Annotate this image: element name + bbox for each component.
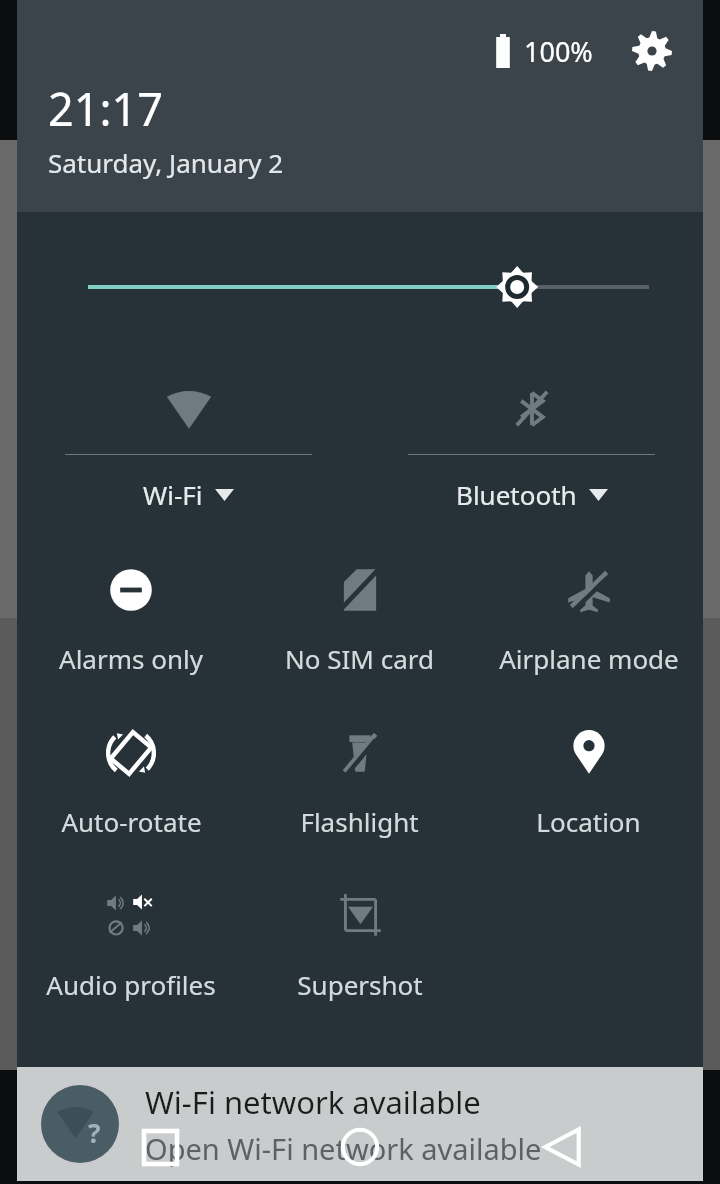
staticText: Supershot [297, 967, 423, 1002]
button[interactable]: Auto-rotate [17, 700, 245, 863]
button[interactable]: Bluetooth [360, 362, 703, 537]
staticText: Open Wi-Fi network available [145, 1129, 542, 1168]
staticText: Location [536, 804, 641, 839]
button[interactable]: Flashlight [245, 700, 474, 863]
button[interactable]: Wi-Fi [17, 362, 360, 537]
staticText: Wi-Fi [143, 477, 203, 512]
button[interactable]: ? [17, 1067, 703, 1181]
button[interactable]: Alarms only [17, 537, 245, 700]
button[interactable]: Brightness [17, 212, 703, 362]
button[interactable]: No SIM card [245, 537, 474, 700]
staticText: Airplane mode [499, 641, 679, 676]
button[interactable]: Recents [128, 1115, 192, 1179]
staticText: Auto-rotate [61, 804, 202, 839]
staticText: Alarms only [59, 641, 203, 676]
staticText: No SIM card [285, 641, 434, 676]
button[interactable]: Settings [629, 28, 675, 74]
staticText: Wi-Fi network available [145, 1081, 481, 1123]
button[interactable]: Back [530, 1115, 594, 1179]
staticText: 100% [524, 33, 593, 70]
button[interactable]: Location [474, 700, 703, 863]
button[interactable]: Audio profiles [17, 863, 245, 1026]
staticText: Audio profiles [46, 967, 216, 1002]
staticText: Flashlight [300, 804, 419, 839]
button[interactable]: Airplane mode [474, 537, 703, 700]
staticText: Saturday, January 2 [48, 145, 284, 180]
staticText: Bluetooth [456, 477, 577, 512]
staticText: 21:17 [48, 78, 164, 139]
staticText: ? [88, 1115, 101, 1150]
button[interactable]: Home [326, 1113, 394, 1181]
button[interactable]: Supershot [245, 863, 474, 1026]
